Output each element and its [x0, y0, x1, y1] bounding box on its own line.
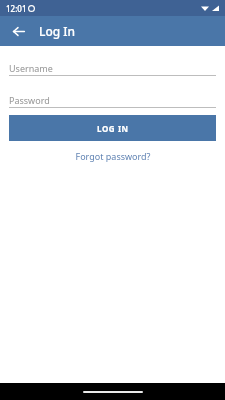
button[interactable]: Back [6, 19, 30, 43]
button[interactable]: Forgot password? [67, 147, 159, 165]
button[interactable]: Password [9, 92, 216, 108]
staticText: Log In [39, 23, 76, 39]
staticText: Username [9, 62, 53, 74]
staticText: LOG IN [97, 123, 129, 134]
staticText: Forgot password? [75, 150, 151, 162]
staticText: 12:01 [6, 3, 27, 14]
button[interactable]: LOG IN [9, 115, 216, 141]
button[interactable]: Username [9, 60, 216, 76]
staticText: Password [9, 94, 50, 106]
